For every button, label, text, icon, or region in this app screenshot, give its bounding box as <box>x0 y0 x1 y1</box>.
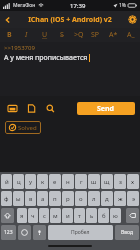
staticText: SP <box>91 30 100 40</box>
staticText: м <box>53 212 58 220</box>
staticText: ь <box>90 212 94 220</box>
staticText: ш <box>91 178 97 186</box>
button[interactable]: Emoji <box>18 225 31 240</box>
button[interactable]: SP <box>88 28 103 42</box>
button[interactable]: Voice input <box>33 225 46 240</box>
button[interactable]: ш <box>88 174 100 189</box>
button[interactable]: з <box>114 174 126 189</box>
staticText: I <box>25 30 28 40</box>
staticText: б <box>102 212 106 220</box>
staticText: р <box>66 195 70 203</box>
button[interactable]: м <box>50 208 61 223</box>
button[interactable]: я <box>17 208 27 223</box>
button[interactable]: A_ <box>123 28 138 42</box>
staticText: >Q <box>74 30 84 40</box>
button[interactable]: U <box>37 28 52 42</box>
button[interactable]: х <box>127 174 139 189</box>
button[interactable]: в <box>25 191 36 206</box>
button[interactable]: 123 <box>1 225 16 240</box>
staticText: в <box>29 195 33 203</box>
staticText: ч <box>31 212 35 220</box>
button[interactable]: Ввод <box>115 225 139 240</box>
staticText: д <box>105 195 109 203</box>
button[interactable]: д <box>101 191 113 206</box>
staticText: я <box>20 212 24 220</box>
staticText: к <box>41 178 45 186</box>
staticText: Ввод <box>121 229 134 236</box>
button[interactable]: Attach image <box>5 101 19 115</box>
staticText: э <box>132 195 135 203</box>
button[interactable]: Attach file <box>24 101 38 115</box>
staticText: МегаФон <box>13 2 36 9</box>
button[interactable]: Shift <box>1 208 14 223</box>
staticText: з <box>119 178 122 186</box>
button[interactable]: Backspace <box>126 208 139 223</box>
staticText: Solved <box>18 124 37 132</box>
staticText: 17:39 <box>70 2 86 10</box>
button[interactable]: I <box>19 28 34 42</box>
button[interactable]: >>1953709 <box>4 44 136 94</box>
staticText: с <box>43 212 46 220</box>
button[interactable]: Пробел <box>48 225 113 240</box>
staticText: г <box>80 178 83 186</box>
button[interactable]: и <box>62 208 73 223</box>
button[interactable]: Search <box>43 101 57 115</box>
button[interactable]: Settings <box>124 11 140 28</box>
button[interactable]: A* <box>106 28 121 42</box>
staticText: A_ <box>127 30 135 40</box>
button[interactable]: ж <box>114 191 126 206</box>
button[interactable]: о <box>75 191 87 206</box>
button[interactable]: >Q <box>71 28 86 42</box>
staticText: ф <box>4 195 9 203</box>
button[interactable]: к <box>37 174 48 189</box>
button[interactable]: э <box>127 191 139 206</box>
button[interactable]: B <box>2 28 17 42</box>
button[interactable]: т <box>74 208 85 223</box>
button[interactable]: б <box>98 208 109 223</box>
staticText: ц <box>17 178 21 186</box>
button[interactable]: Back <box>0 11 16 28</box>
button[interactable]: ь <box>86 208 97 223</box>
button[interactable]: с <box>39 208 49 223</box>
staticText: B <box>7 30 12 40</box>
button[interactable]: Solved <box>9 121 37 134</box>
staticText: S <box>60 30 64 40</box>
button[interactable]: ч <box>28 208 38 223</box>
staticText: е <box>53 178 57 186</box>
staticText: п <box>53 195 57 203</box>
staticText: и <box>66 212 70 220</box>
staticText: 123 <box>4 229 13 236</box>
staticText: ж <box>118 195 123 203</box>
button[interactable]: S <box>54 28 69 42</box>
staticText: й <box>5 178 9 186</box>
staticText: IChan (iOS + Android) v2 <box>28 15 112 25</box>
button[interactable]: л <box>88 191 100 206</box>
button[interactable]: н <box>62 174 74 189</box>
staticText: A* <box>109 30 118 40</box>
staticText: Пробел <box>71 229 90 236</box>
staticText: ю <box>113 212 118 220</box>
staticText: >>1953709 <box>4 44 35 52</box>
staticText: а <box>41 195 45 203</box>
button[interactable]: г <box>75 174 87 189</box>
button[interactable]: ю <box>110 208 121 223</box>
button[interactable]: е <box>49 174 61 189</box>
staticText: щ <box>104 178 110 186</box>
button[interactable]: ы <box>13 191 24 206</box>
button[interactable]: ф <box>1 191 12 206</box>
staticText: у <box>29 178 33 186</box>
staticText: о <box>79 195 83 203</box>
button[interactable]: у <box>25 174 36 189</box>
staticText: U <box>42 30 48 40</box>
staticText: А у меня прописывается <box>4 53 88 63</box>
button[interactable]: Send <box>77 102 135 115</box>
staticText: Send <box>97 104 115 114</box>
button[interactable]: п <box>49 191 61 206</box>
button[interactable]: щ <box>101 174 113 189</box>
button[interactable]: ц <box>13 174 24 189</box>
staticText: 1% <box>119 2 127 9</box>
button[interactable]: р <box>62 191 74 206</box>
button[interactable]: й <box>1 174 12 189</box>
button[interactable]: а <box>37 191 48 206</box>
staticText: н <box>66 178 70 186</box>
